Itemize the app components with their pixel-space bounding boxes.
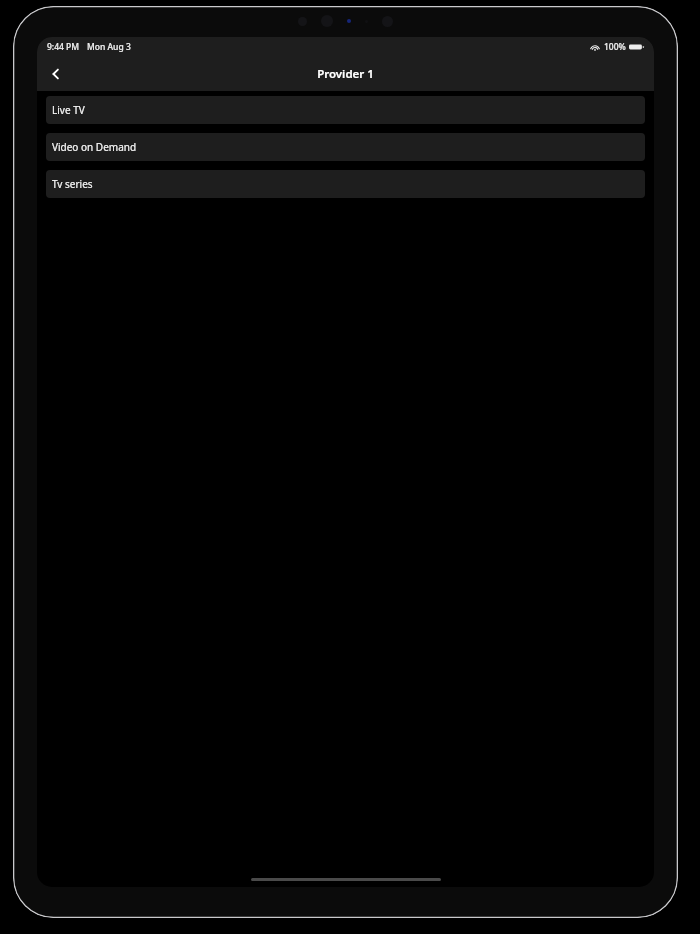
staticText: Live TV bbox=[52, 103, 85, 117]
staticText: Provider 1 bbox=[317, 66, 374, 82]
staticText: 100% bbox=[604, 41, 626, 53]
staticText: Tv series bbox=[52, 177, 93, 191]
staticText: Mon Aug 3 bbox=[87, 41, 131, 53]
staticText: 9:44 PM bbox=[47, 41, 80, 53]
button[interactable]: Live TV bbox=[46, 96, 645, 124]
staticText: Video on Demand bbox=[52, 140, 137, 154]
button[interactable]: Tv series bbox=[46, 170, 645, 198]
button[interactable]: Back bbox=[41, 59, 71, 89]
button[interactable]: Video on Demand bbox=[46, 133, 645, 161]
